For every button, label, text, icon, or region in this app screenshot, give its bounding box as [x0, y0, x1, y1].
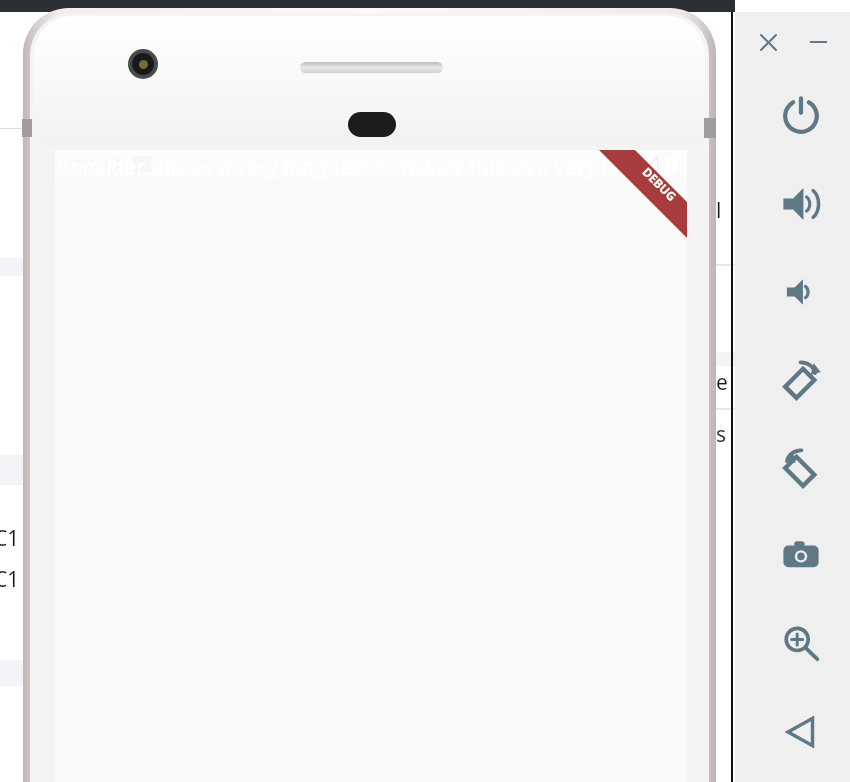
staticText: DEBUG [639, 163, 680, 204]
button[interactable]: Back [735, 688, 850, 776]
button[interactable]: Rotate left [735, 336, 850, 424]
button[interactable]: Take screenshot [735, 512, 850, 600]
staticText: l [716, 196, 722, 225]
staticText: e [716, 368, 728, 397]
staticText: s [716, 420, 727, 449]
button[interactable]: Close [751, 25, 785, 59]
button[interactable]: Power [735, 72, 850, 160]
button[interactable]: Minimize [801, 25, 835, 59]
staticText: C1 [0, 524, 20, 553]
staticText: Consider this as a very long text.Consid… [57, 153, 685, 182]
button[interactable]: Rotate right [735, 424, 850, 512]
button[interactable]: Consider this as a very long text.Consid… [55, 150, 687, 184]
staticText: C1 [0, 565, 20, 594]
button[interactable]: Volume down [735, 248, 850, 336]
button[interactable]: Volume up [735, 160, 850, 248]
button[interactable]: Zoom [735, 600, 850, 688]
